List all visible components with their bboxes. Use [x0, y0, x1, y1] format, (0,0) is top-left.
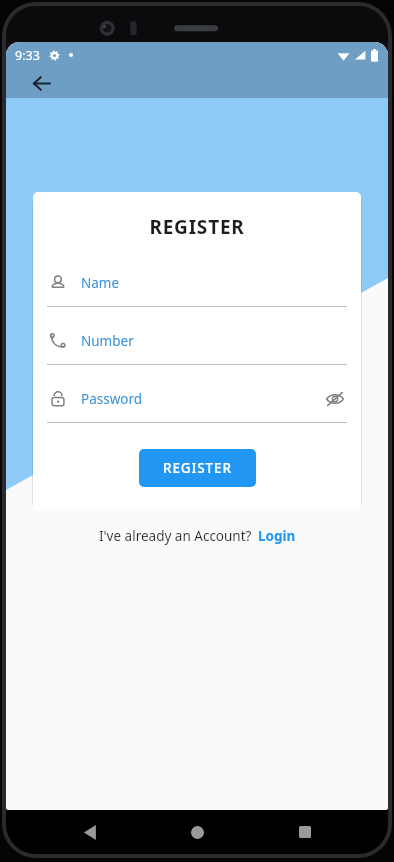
button[interactable]: Password [47, 382, 347, 423]
button[interactable]: Back [66, 810, 114, 854]
button[interactable]: Home [173, 810, 221, 854]
button[interactable]: Recent apps [281, 810, 329, 854]
staticText: I've already an Account? [99, 527, 252, 545]
staticText: Password [81, 390, 143, 408]
button[interactable]: Show password [323, 387, 347, 411]
button[interactable]: Login [258, 527, 296, 545]
button[interactable]: Name [47, 266, 347, 307]
button[interactable]: Number [47, 324, 347, 365]
staticText: REGISTER [33, 214, 361, 240]
staticText: REGISTER [163, 459, 232, 477]
staticText: Number [81, 332, 134, 350]
staticText: 9:33 [15, 47, 40, 64]
staticText: Name [81, 274, 120, 292]
button[interactable]: REGISTER [139, 449, 256, 487]
button[interactable]: Back [26, 68, 56, 98]
staticText: Login [258, 527, 296, 545]
